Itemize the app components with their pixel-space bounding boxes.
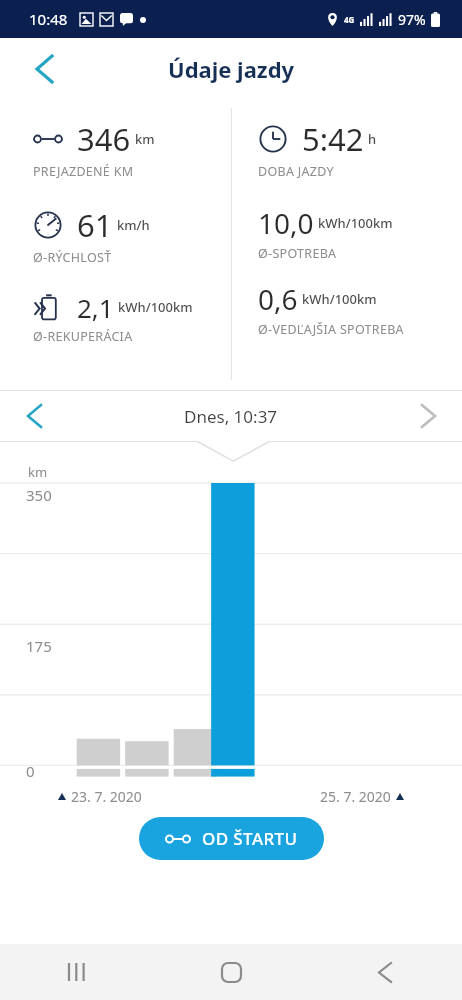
staticText: 5:42 xyxy=(302,118,364,160)
staticText: km xyxy=(135,130,155,148)
staticText: 97% xyxy=(398,10,426,29)
staticText: 175 xyxy=(26,636,52,656)
button[interactable]: Previous day xyxy=(10,392,58,440)
staticText: km xyxy=(28,463,48,481)
staticText: 10:48 xyxy=(29,9,68,29)
staticText: Ø-REKUPERÁCIA xyxy=(33,328,133,345)
staticText: h xyxy=(368,130,377,148)
button[interactable]: Next day xyxy=(404,392,452,440)
staticText: 10,0 xyxy=(258,204,314,242)
staticText: PREJAZDENÉ KM xyxy=(33,163,134,180)
staticText: 0 xyxy=(26,761,35,781)
staticText: kWh/100km xyxy=(318,214,393,232)
button[interactable]: Back xyxy=(18,43,70,95)
staticText: km/h xyxy=(117,216,150,234)
button[interactable]: Recents xyxy=(0,944,154,1000)
staticText: 346 xyxy=(77,118,131,160)
staticText: OD ŠTARTU xyxy=(202,827,298,850)
staticText: DOBA JAZDY xyxy=(258,163,334,180)
staticText: Ø-SPOTREBA xyxy=(258,245,337,262)
button[interactable]: Back xyxy=(308,944,462,1000)
staticText: Ø-RÝCHLOSŤ xyxy=(33,249,112,266)
button[interactable]: Home xyxy=(154,944,308,1000)
staticText: 350 xyxy=(26,485,52,505)
staticText: 2,1 xyxy=(77,290,114,325)
staticText: Údaje jazdy xyxy=(168,54,295,84)
staticText: 61 xyxy=(77,204,113,246)
staticText: 4G xyxy=(344,14,355,25)
staticText: kWh/100km xyxy=(302,290,377,308)
staticText: Dnes, 10:37 xyxy=(184,405,278,428)
staticText: 25. 7. 2020 xyxy=(320,787,391,806)
staticText: 23. 7. 2020 xyxy=(71,787,142,806)
staticText: 0,6 xyxy=(258,280,298,318)
staticText: Ø-VEDĽAJŠIA SPOTREBA xyxy=(258,321,404,338)
staticText: kWh/100km xyxy=(118,298,193,316)
button[interactable]: OD ŠTARTU xyxy=(139,817,324,860)
